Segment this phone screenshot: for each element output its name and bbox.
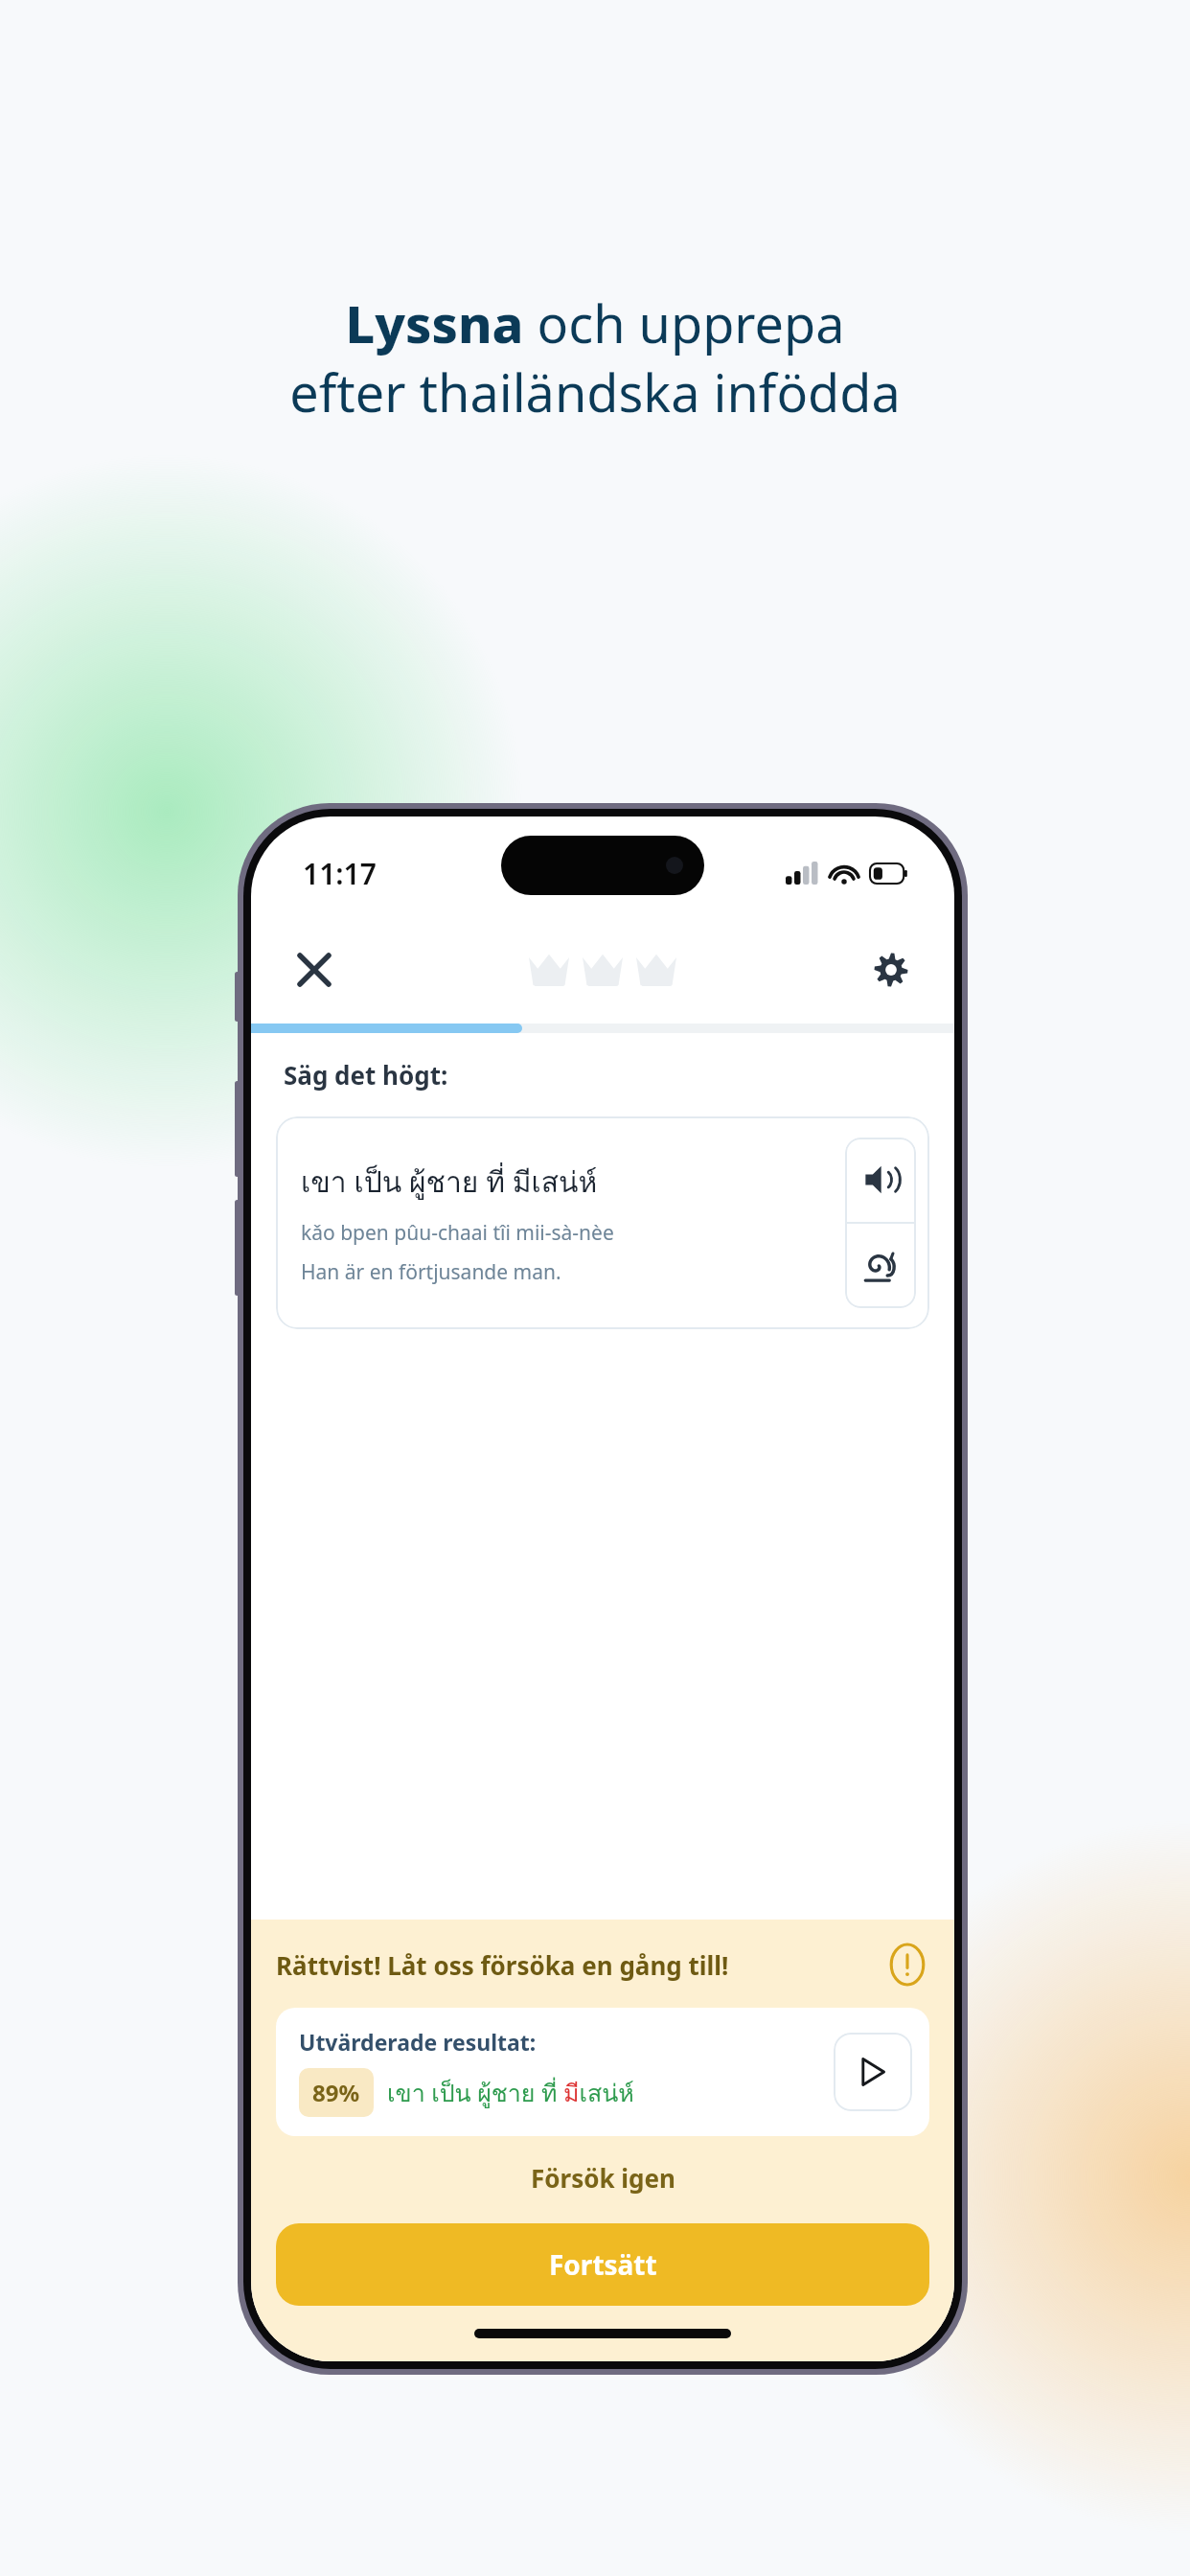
button[interactable]: Settings (860, 939, 922, 1000)
button[interactable]: Fortsätt (276, 2223, 929, 2306)
staticText: Han är en förtjusande man. (301, 1258, 561, 1286)
staticText: 89% (312, 2077, 360, 2108)
button[interactable]: Info (885, 1943, 929, 1987)
staticText: kǎo bpen pûu-chaai tîi mii-sà-nèe (301, 1219, 614, 1247)
staticText: Försök igen (531, 2161, 675, 2195)
staticText: Rättvist! Låt oss försöka en gång till! (276, 1948, 885, 1982)
button[interactable]: Play audio (845, 1138, 916, 1222)
staticText: Lyssna och upprepa efter thailändska inf… (289, 287, 901, 426)
button[interactable]: Close (284, 939, 345, 1000)
button[interactable]: เขา เป็น ผู้ชาย ที่ มีเสน่ห์ (276, 1116, 929, 1329)
button[interactable]: Försök igen (276, 2161, 929, 2195)
staticText: เขา เป็น ผู้ชาย ที่ มีเสน่ห์ (301, 1160, 598, 1206)
button[interactable]: Play slow audio (845, 1224, 916, 1308)
staticText: 11:17 (303, 854, 377, 893)
button[interactable]: Utvärderade resultat: (276, 2008, 929, 2136)
button[interactable]: Play recording (834, 2033, 912, 2111)
staticText: Säg det högt: (284, 1058, 448, 1092)
staticText: เขา เป็น ผู้ชาย ที่ มีเสน่ห์ (387, 2074, 634, 2112)
staticText: Utvärderade resultat: (299, 2027, 537, 2057)
staticText: Fortsätt (549, 2246, 657, 2283)
